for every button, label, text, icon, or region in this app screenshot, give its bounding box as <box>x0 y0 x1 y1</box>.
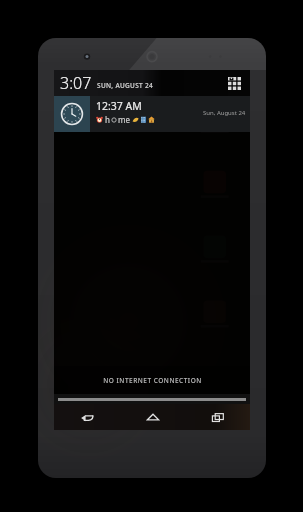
staticText: 3:07 <box>60 72 92 94</box>
staticText: SUN, AUGUST 24 <box>97 81 154 90</box>
button[interactable]: 12:37 AM <box>54 96 250 132</box>
staticText: NO INTERNET CONNECTION <box>103 376 202 385</box>
button[interactable]: Home <box>120 404 185 430</box>
button[interactable]: Recent apps <box>185 404 250 430</box>
staticText: me <box>118 114 130 125</box>
staticText: 12:37 AM <box>96 99 142 113</box>
button[interactable]: Back <box>54 404 120 430</box>
button[interactable]: Quick settings <box>221 70 247 96</box>
button[interactable]: Close notification shade <box>54 394 250 404</box>
staticText: Sun, August 24 <box>203 109 246 117</box>
staticText: h <box>105 114 110 125</box>
